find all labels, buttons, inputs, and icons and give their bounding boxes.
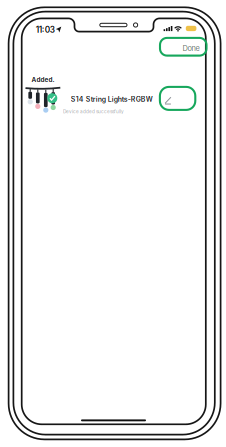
button[interactable]: Rename device [0, 0, 226, 447]
button[interactable]: Done [0, 0, 226, 447]
staticText: Done [182, 44, 199, 53]
staticText: 11:03 [36, 25, 55, 35]
staticText: S14 String Lights-RGBW [71, 95, 153, 103]
staticText: Added. [31, 76, 54, 83]
staticText: Device added successfully [63, 109, 124, 114]
